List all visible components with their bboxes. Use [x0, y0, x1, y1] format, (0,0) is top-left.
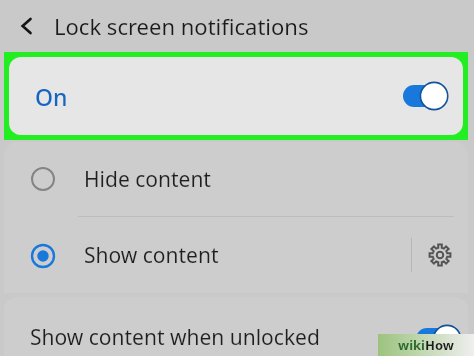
staticText: Show content — [84, 241, 219, 270]
staticText: Show content when unlocked — [30, 323, 320, 352]
button[interactable]: Show content — [4, 241, 411, 270]
button[interactable]: On — [9, 57, 463, 135]
button[interactable]: Show content when unlocked — [4, 297, 468, 356]
staticText: How — [425, 336, 454, 354]
staticText: Lock screen notifications — [54, 11, 309, 41]
staticText: On — [35, 81, 68, 112]
staticText: Hide content — [84, 165, 211, 194]
button[interactable]: Back — [0, 0, 54, 52]
button[interactable]: Settings — [412, 217, 468, 293]
staticText: wiki — [398, 336, 425, 354]
button[interactable]: Hide content — [4, 142, 468, 216]
